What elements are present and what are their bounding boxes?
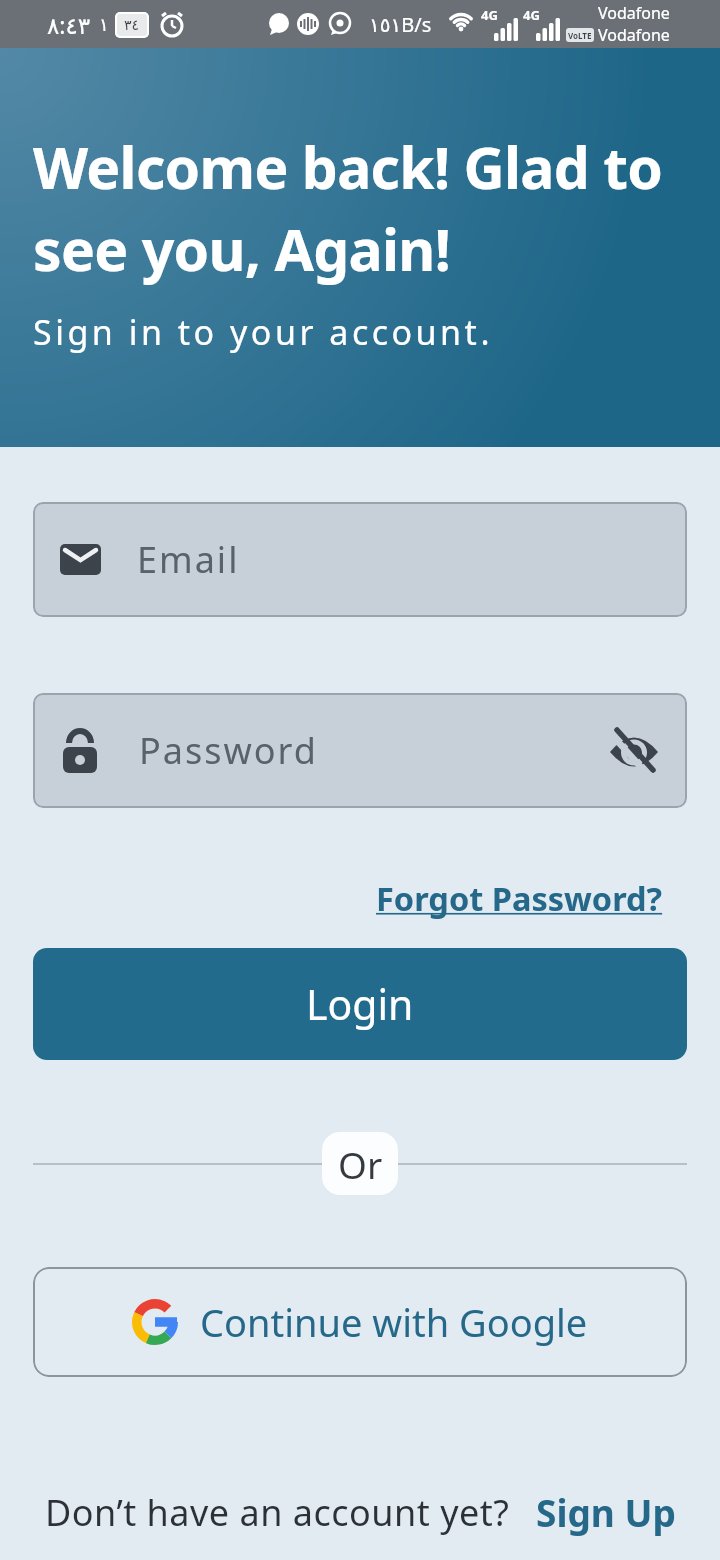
staticText: ٣٤ (124, 17, 140, 33)
staticText: Password (139, 726, 318, 775)
staticText: Welcome back! Glad to see you, Again! (33, 128, 663, 288)
button[interactable]: Sign Up (536, 1487, 676, 1537)
staticText: ٨:٤٣ (47, 9, 91, 40)
button[interactable]: Login (33, 948, 687, 1060)
staticText: 4G (523, 6, 540, 24)
staticText: VoLTE (568, 30, 592, 41)
staticText: Login (306, 976, 414, 1032)
staticText: Email (137, 535, 240, 584)
staticText: Or (338, 1139, 383, 1189)
staticText: Vodafone (598, 24, 670, 46)
staticText: ١ (99, 14, 109, 35)
button[interactable]: Password (33, 693, 687, 808)
button[interactable]: Continue with Google (33, 1267, 687, 1377)
staticText: ١٥١B/s (369, 11, 432, 38)
staticText: Don’t have an account yet? (45, 1488, 510, 1537)
staticText: Vodafone (598, 2, 670, 24)
button[interactable]: Email (33, 502, 687, 617)
staticText: Continue with Google (200, 1296, 588, 1348)
staticText: Sign in to your account. (33, 309, 494, 355)
staticText: 4G (481, 6, 498, 24)
button[interactable]: Forgot Password? (376, 876, 663, 920)
